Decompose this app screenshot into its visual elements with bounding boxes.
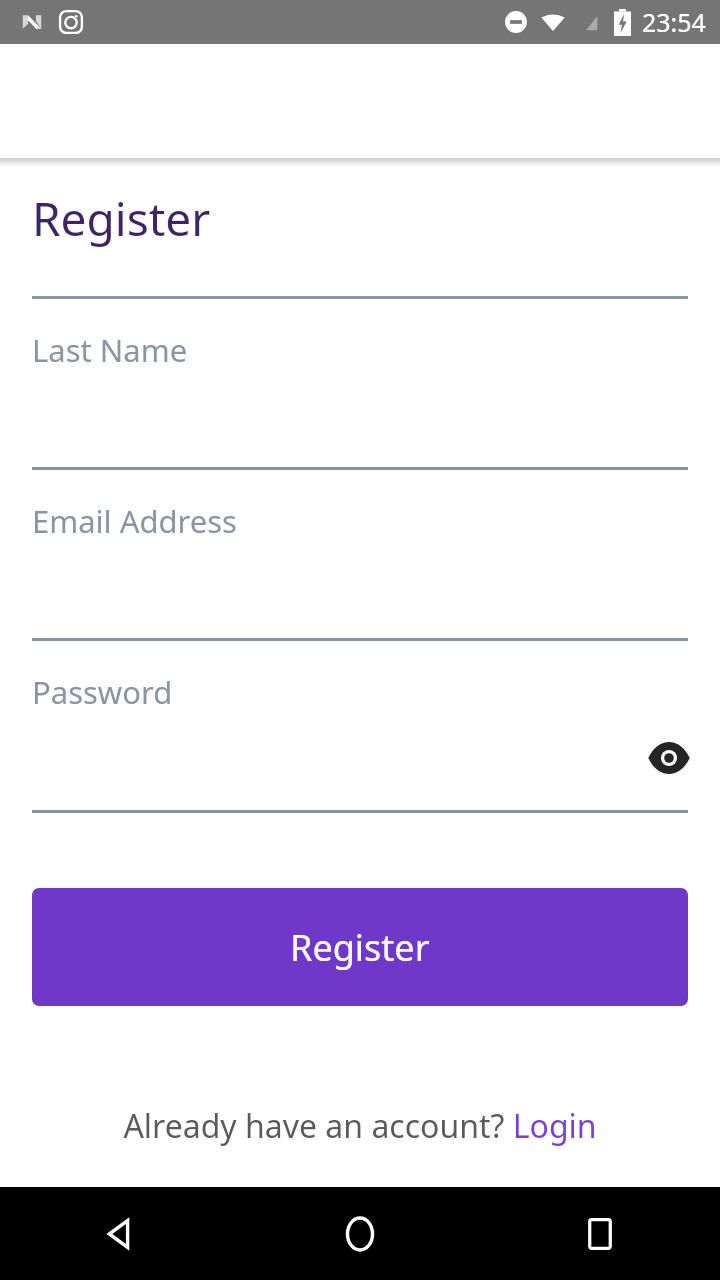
button[interactable]: Email Address <box>0 470 720 641</box>
button[interactable]: Register <box>32 888 688 1006</box>
button[interactable]: Show password <box>644 733 694 783</box>
staticText: Register <box>32 187 211 250</box>
button[interactable]: Home <box>240 1187 480 1280</box>
button[interactable]: Recent apps <box>480 1187 720 1280</box>
button[interactable]: Back <box>0 1187 240 1280</box>
staticText: Password <box>32 671 173 713</box>
staticText: Email Address <box>32 500 237 542</box>
button[interactable]: Already have an account? Login <box>0 1104 720 1148</box>
button[interactable]: Last Name <box>0 299 720 470</box>
staticText: 23:54 <box>642 5 706 39</box>
staticText: Already have an account? Login <box>123 1104 597 1148</box>
staticText: Last Name <box>32 329 188 371</box>
button[interactable]: Password <box>0 641 720 813</box>
staticText: Register <box>290 923 430 972</box>
